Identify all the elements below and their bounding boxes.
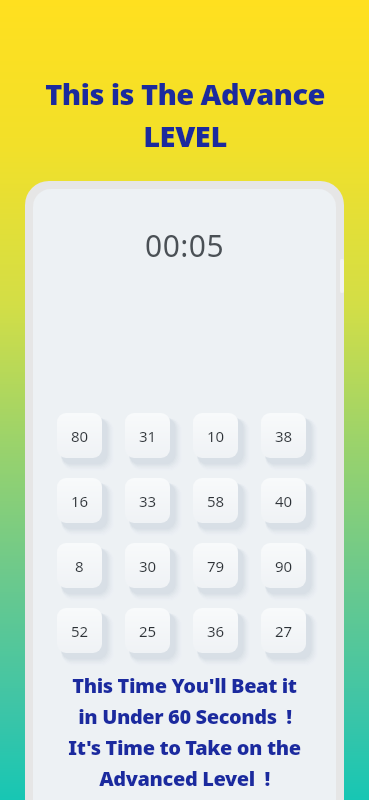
- button[interactable]: 31: [125, 413, 170, 458]
- button[interactable]: 90: [261, 543, 306, 588]
- staticText: in Under 60 Seconds !: [78, 703, 292, 730]
- button[interactable]: 36: [193, 608, 238, 653]
- staticText: Advanced Level !: [99, 765, 270, 792]
- staticText: 38: [275, 426, 293, 446]
- button[interactable]: 10: [193, 413, 238, 458]
- button[interactable]: 16: [57, 478, 102, 523]
- staticText: 80: [71, 426, 89, 446]
- staticText: This Time You'll Beat it: [72, 672, 297, 699]
- staticText: 10: [207, 426, 225, 446]
- staticText: 33: [139, 491, 157, 511]
- staticText: It's Time to Take on the: [68, 734, 301, 761]
- staticText: 00:05: [145, 225, 225, 266]
- button[interactable]: 33: [125, 478, 170, 523]
- staticText: 58: [207, 491, 225, 511]
- button[interactable]: 30: [125, 543, 170, 588]
- staticText: 30: [139, 556, 157, 576]
- staticText: 79: [207, 556, 225, 576]
- button[interactable]: 25: [125, 608, 170, 653]
- staticText: 40: [275, 491, 293, 511]
- button[interactable]: 8: [57, 543, 102, 588]
- button[interactable]: 40: [261, 478, 306, 523]
- staticText: 25: [139, 621, 157, 641]
- staticText: LEVEL: [143, 116, 227, 155]
- staticText: This is The Advance: [45, 74, 325, 113]
- staticText: 16: [71, 491, 89, 511]
- staticText: 27: [275, 621, 293, 641]
- button[interactable]: 80: [57, 413, 102, 458]
- staticText: 8: [75, 556, 84, 576]
- button[interactable]: 38: [261, 413, 306, 458]
- button[interactable]: 79: [193, 543, 238, 588]
- button[interactable]: 27: [261, 608, 306, 653]
- staticText: 36: [207, 621, 225, 641]
- staticText: 52: [71, 621, 89, 641]
- staticText: 90: [275, 556, 293, 576]
- button[interactable]: 52: [57, 608, 102, 653]
- staticText: 31: [139, 426, 157, 446]
- button[interactable]: 58: [193, 478, 238, 523]
